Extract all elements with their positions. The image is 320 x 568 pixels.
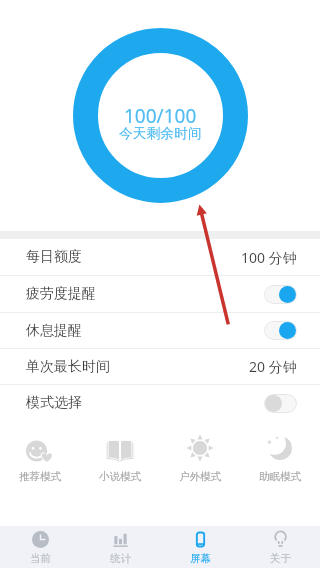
button[interactable]: Off bbox=[264, 394, 297, 413]
button[interactable]: 模式选择 bbox=[0, 385, 320, 421]
staticText: 当前 bbox=[30, 552, 51, 565]
staticText: 每日额度 bbox=[26, 248, 82, 266]
staticText: 助眠模式 bbox=[259, 470, 301, 483]
button[interactable]: On bbox=[264, 321, 297, 340]
staticText: 单次最长时间 bbox=[26, 358, 110, 376]
staticText: 20 分钟 bbox=[249, 357, 297, 376]
staticText: 推荐模式 bbox=[19, 470, 61, 483]
staticText: 关于 bbox=[270, 552, 291, 565]
button[interactable]: 小说模式 bbox=[80, 421, 160, 483]
staticText: 休息提醒 bbox=[26, 322, 82, 340]
staticText: 小说模式 bbox=[99, 470, 141, 483]
staticText: 100/100 bbox=[124, 103, 197, 129]
button[interactable]: 单次最长时间 bbox=[0, 349, 320, 384]
staticText: 今天剩余时间 bbox=[119, 125, 202, 142]
button[interactable]: On bbox=[264, 285, 297, 304]
button[interactable]: 户外模式 bbox=[160, 421, 240, 483]
button[interactable]: 关于 bbox=[240, 526, 320, 568]
staticText: 疲劳度提醒 bbox=[26, 285, 96, 303]
button[interactable]: 当前 bbox=[0, 526, 80, 568]
button[interactable]: 助眠模式 bbox=[240, 421, 320, 483]
button[interactable]: 统计 bbox=[80, 526, 160, 568]
button[interactable]: 推荐模式 bbox=[0, 421, 80, 483]
button[interactable]: 休息提醒 bbox=[0, 313, 320, 348]
staticText: 100 分钟 bbox=[241, 248, 297, 267]
staticText: 统计 bbox=[110, 552, 131, 565]
staticText: 户外模式 bbox=[179, 470, 221, 483]
button[interactable]: 屏幕 bbox=[160, 526, 240, 568]
button[interactable]: 疲劳度提醒 bbox=[0, 276, 320, 312]
staticText: 屏幕 bbox=[190, 552, 211, 565]
button[interactable]: 每日额度 bbox=[0, 239, 320, 275]
staticText: 模式选择 bbox=[26, 394, 82, 412]
